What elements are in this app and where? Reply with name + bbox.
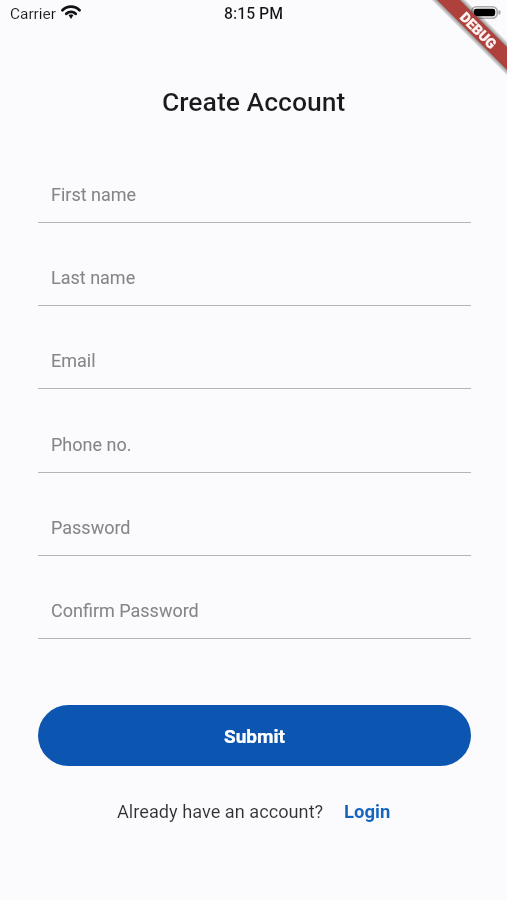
other: Battery [471,6,501,19]
other: Wi-Fi signal [61,4,81,20]
staticText: Login [344,801,391,823]
staticText: Password [51,517,131,538]
button[interactable]: Submit [38,705,471,766]
staticText: First name [51,184,137,205]
staticText: DEBUG [457,9,500,52]
staticText: Already have an account? [117,801,324,822]
staticText: Confirm Password [51,600,199,621]
button[interactable]: Login [344,801,391,823]
staticText: Email [51,350,96,371]
staticText: Carrier [10,5,56,23]
button[interactable]: Password [38,504,471,556]
staticText: Last name [51,267,136,288]
button[interactable]: Confirm Password [38,587,471,639]
staticText: Phone no. [51,434,132,455]
button[interactable]: First name [38,171,471,223]
button[interactable]: Last name [38,254,471,306]
button[interactable]: Email [38,337,471,389]
staticText: Create Account [162,86,346,117]
button[interactable]: Phone no. [38,421,471,473]
staticText: 8:15 PM [224,4,283,23]
staticText: Submit [224,725,285,747]
